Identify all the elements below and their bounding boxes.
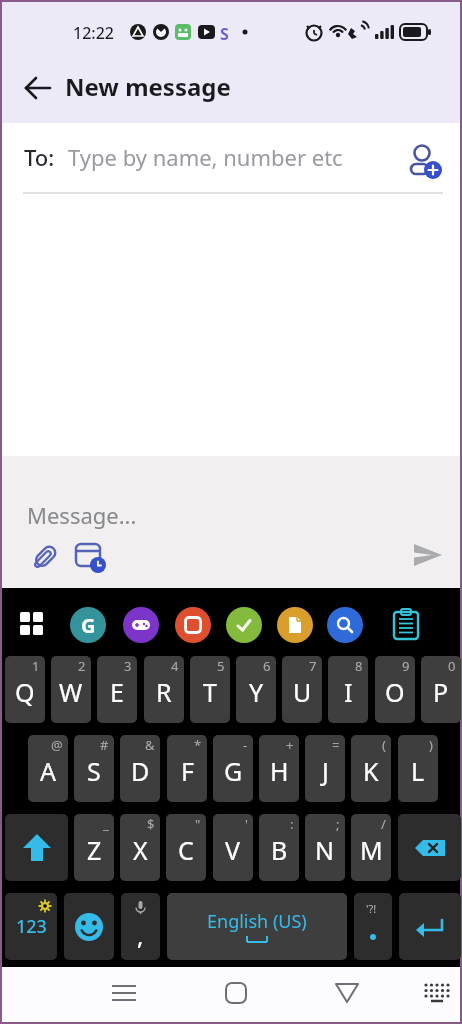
staticText: B [271, 833, 288, 867]
button[interactable]: To: [2, 123, 460, 194]
button[interactable] [226, 607, 262, 643]
button[interactable] [28, 540, 62, 574]
staticText: C [178, 833, 194, 867]
button[interactable]: Q [5, 656, 45, 723]
button[interactable] [2, 967, 154, 1022]
staticText: 8 [355, 657, 363, 675]
staticText: H [270, 754, 289, 788]
staticText: G [224, 754, 243, 788]
staticText: R [156, 675, 172, 709]
button[interactable]: J [305, 735, 345, 802]
button[interactable] [5, 814, 68, 881]
button[interactable] [175, 607, 211, 643]
staticText: S [220, 23, 229, 45]
button[interactable] [277, 607, 313, 643]
button[interactable]: B [259, 814, 299, 881]
staticText: 6 [263, 657, 271, 675]
staticText: V [225, 833, 241, 867]
staticText: Message... [27, 500, 137, 530]
staticText: / [381, 815, 386, 833]
button[interactable] [154, 967, 307, 1022]
button[interactable]: P [421, 656, 461, 723]
button[interactable]: X [120, 814, 160, 881]
button[interactable] [384, 602, 428, 646]
button[interactable]: M [351, 814, 391, 881]
button[interactable]: A [28, 735, 68, 802]
button[interactable]: , [121, 893, 160, 960]
button[interactable]: G [213, 735, 253, 802]
button[interactable] [398, 814, 461, 881]
staticText: Y [249, 675, 264, 709]
staticText: ' [245, 815, 248, 833]
staticText: 7 [309, 657, 317, 675]
button[interactable]: G [70, 607, 106, 643]
button[interactable]: L [398, 735, 438, 802]
staticText: A [40, 754, 56, 788]
button[interactable] [399, 893, 461, 960]
staticText: O [385, 675, 405, 709]
staticText: # [100, 736, 109, 754]
button[interactable]: N [305, 814, 345, 881]
staticText: ; [336, 815, 340, 833]
staticText: P [433, 675, 449, 709]
staticText: 4 [171, 657, 179, 675]
button[interactable]: '?! [354, 893, 392, 960]
staticText: @ [51, 736, 63, 754]
staticText: : [290, 815, 294, 833]
button[interactable]: S [74, 735, 114, 802]
staticText: & [145, 736, 155, 754]
button[interactable]: 123 [5, 893, 57, 960]
staticText: G [81, 612, 96, 639]
button[interactable]: C [166, 814, 206, 881]
staticText: F [181, 754, 194, 788]
button[interactable]: E [97, 656, 137, 723]
staticText: - [243, 736, 248, 754]
button[interactable] [412, 542, 444, 574]
button[interactable]: V [213, 814, 253, 881]
staticText: New message [65, 70, 231, 103]
staticText: '?! [366, 901, 377, 916]
button[interactable] [64, 893, 114, 960]
button[interactable]: D [120, 735, 160, 802]
button[interactable]: U [282, 656, 322, 723]
staticText: Z [87, 833, 102, 867]
staticText: Type by name, number etc [68, 142, 343, 172]
button[interactable] [18, 68, 58, 108]
staticText: T [203, 675, 217, 709]
staticText: + [286, 736, 294, 754]
button[interactable]: F [167, 735, 207, 802]
button[interactable]: H [259, 735, 299, 802]
button[interactable]: Z [74, 814, 114, 881]
button[interactable]: I [328, 656, 368, 723]
button[interactable] [74, 542, 106, 574]
staticText: " [195, 815, 201, 833]
staticText: M [360, 833, 383, 867]
button[interactable]: W [51, 656, 91, 723]
staticText: J [322, 754, 329, 788]
button[interactable]: English (US) [167, 893, 347, 960]
button[interactable]: O [375, 656, 415, 723]
button[interactable]: K [351, 735, 391, 802]
button[interactable]: R [144, 656, 184, 723]
staticText: K [363, 754, 379, 788]
button[interactable]: Y [236, 656, 276, 723]
staticText: 12:22 [73, 22, 114, 44]
button[interactable] [307, 967, 460, 1022]
button[interactable]: T [190, 656, 230, 723]
staticText: N [315, 833, 335, 867]
staticText: 2 [78, 657, 86, 675]
staticText: ) [429, 736, 433, 754]
staticText: English (US) [207, 909, 307, 934]
staticText: X [133, 833, 148, 867]
staticText: E [110, 675, 124, 709]
staticText: I [344, 675, 353, 709]
staticText: Q [15, 675, 35, 709]
button[interactable] [123, 607, 159, 643]
staticText: ( [382, 736, 386, 754]
staticText: $ [147, 815, 155, 833]
button[interactable] [12, 604, 52, 644]
button[interactable] [327, 607, 363, 643]
staticText: 123 [16, 914, 47, 939]
staticText: D [131, 754, 150, 788]
staticText: W [59, 675, 83, 709]
